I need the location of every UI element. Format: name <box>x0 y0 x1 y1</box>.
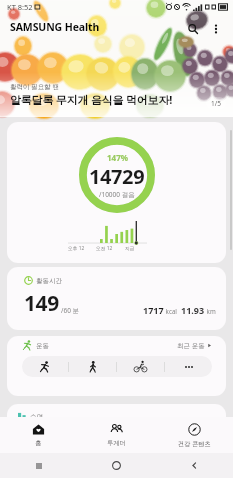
staticText: 홈 <box>35 439 42 447</box>
staticText: 1/5 <box>211 99 221 108</box>
button[interactable]: Recent apps <box>0 453 77 478</box>
staticText: 149 <box>24 289 59 318</box>
staticText: /10000 걸음 <box>99 190 135 199</box>
button[interactable]: 147% <box>7 122 226 263</box>
staticText: 투게더 <box>107 439 126 447</box>
button[interactable]: 최근 운동 <box>177 341 212 350</box>
staticText: 147% <box>107 152 128 163</box>
button[interactable]: 홈 <box>0 417 77 453</box>
staticText: 수면 <box>30 413 43 421</box>
button[interactable]: More exercises <box>165 356 212 377</box>
staticText: 건강 콘텐츠 <box>178 439 211 447</box>
button[interactable]: 건강 콘텐츠 <box>155 417 233 453</box>
button[interactable]: Search <box>183 19 202 38</box>
button[interactable]: Back <box>155 453 233 478</box>
button[interactable]: More options <box>206 19 225 38</box>
button[interactable]: 활동시간 <box>7 267 226 330</box>
button[interactable]: 수면 <box>7 404 226 444</box>
staticText: kcal <box>164 307 177 315</box>
staticText: 최근 운동 <box>177 341 205 350</box>
staticText: 오후 12 <box>68 245 85 252</box>
staticText: 활력이 필요할 땐 <box>10 82 59 91</box>
staticText: km <box>205 307 216 315</box>
button[interactable]: Running <box>22 356 68 377</box>
staticText: 알록달록 무지개 음식을 먹어보자! <box>10 92 173 107</box>
staticText: 오전 12 <box>96 245 113 252</box>
button[interactable]: 운동 <box>7 336 226 396</box>
staticText: 14729 <box>89 163 145 190</box>
staticText: SAMSUNG Health <box>10 20 100 34</box>
staticText: 활동시간 <box>36 277 62 285</box>
staticText: 지금 <box>125 245 135 251</box>
staticText: 11.93 <box>181 304 205 316</box>
button[interactable]: 투게더 <box>77 417 155 453</box>
staticText: 운동 <box>36 342 49 350</box>
staticText: 1717 <box>143 304 164 316</box>
staticText: KT 8:52 <box>7 2 33 12</box>
button[interactable]: Home <box>77 453 155 478</box>
button[interactable]: Walking <box>69 356 116 377</box>
button[interactable]: Cycling <box>117 356 164 377</box>
staticText: /60 분 <box>61 306 80 315</box>
